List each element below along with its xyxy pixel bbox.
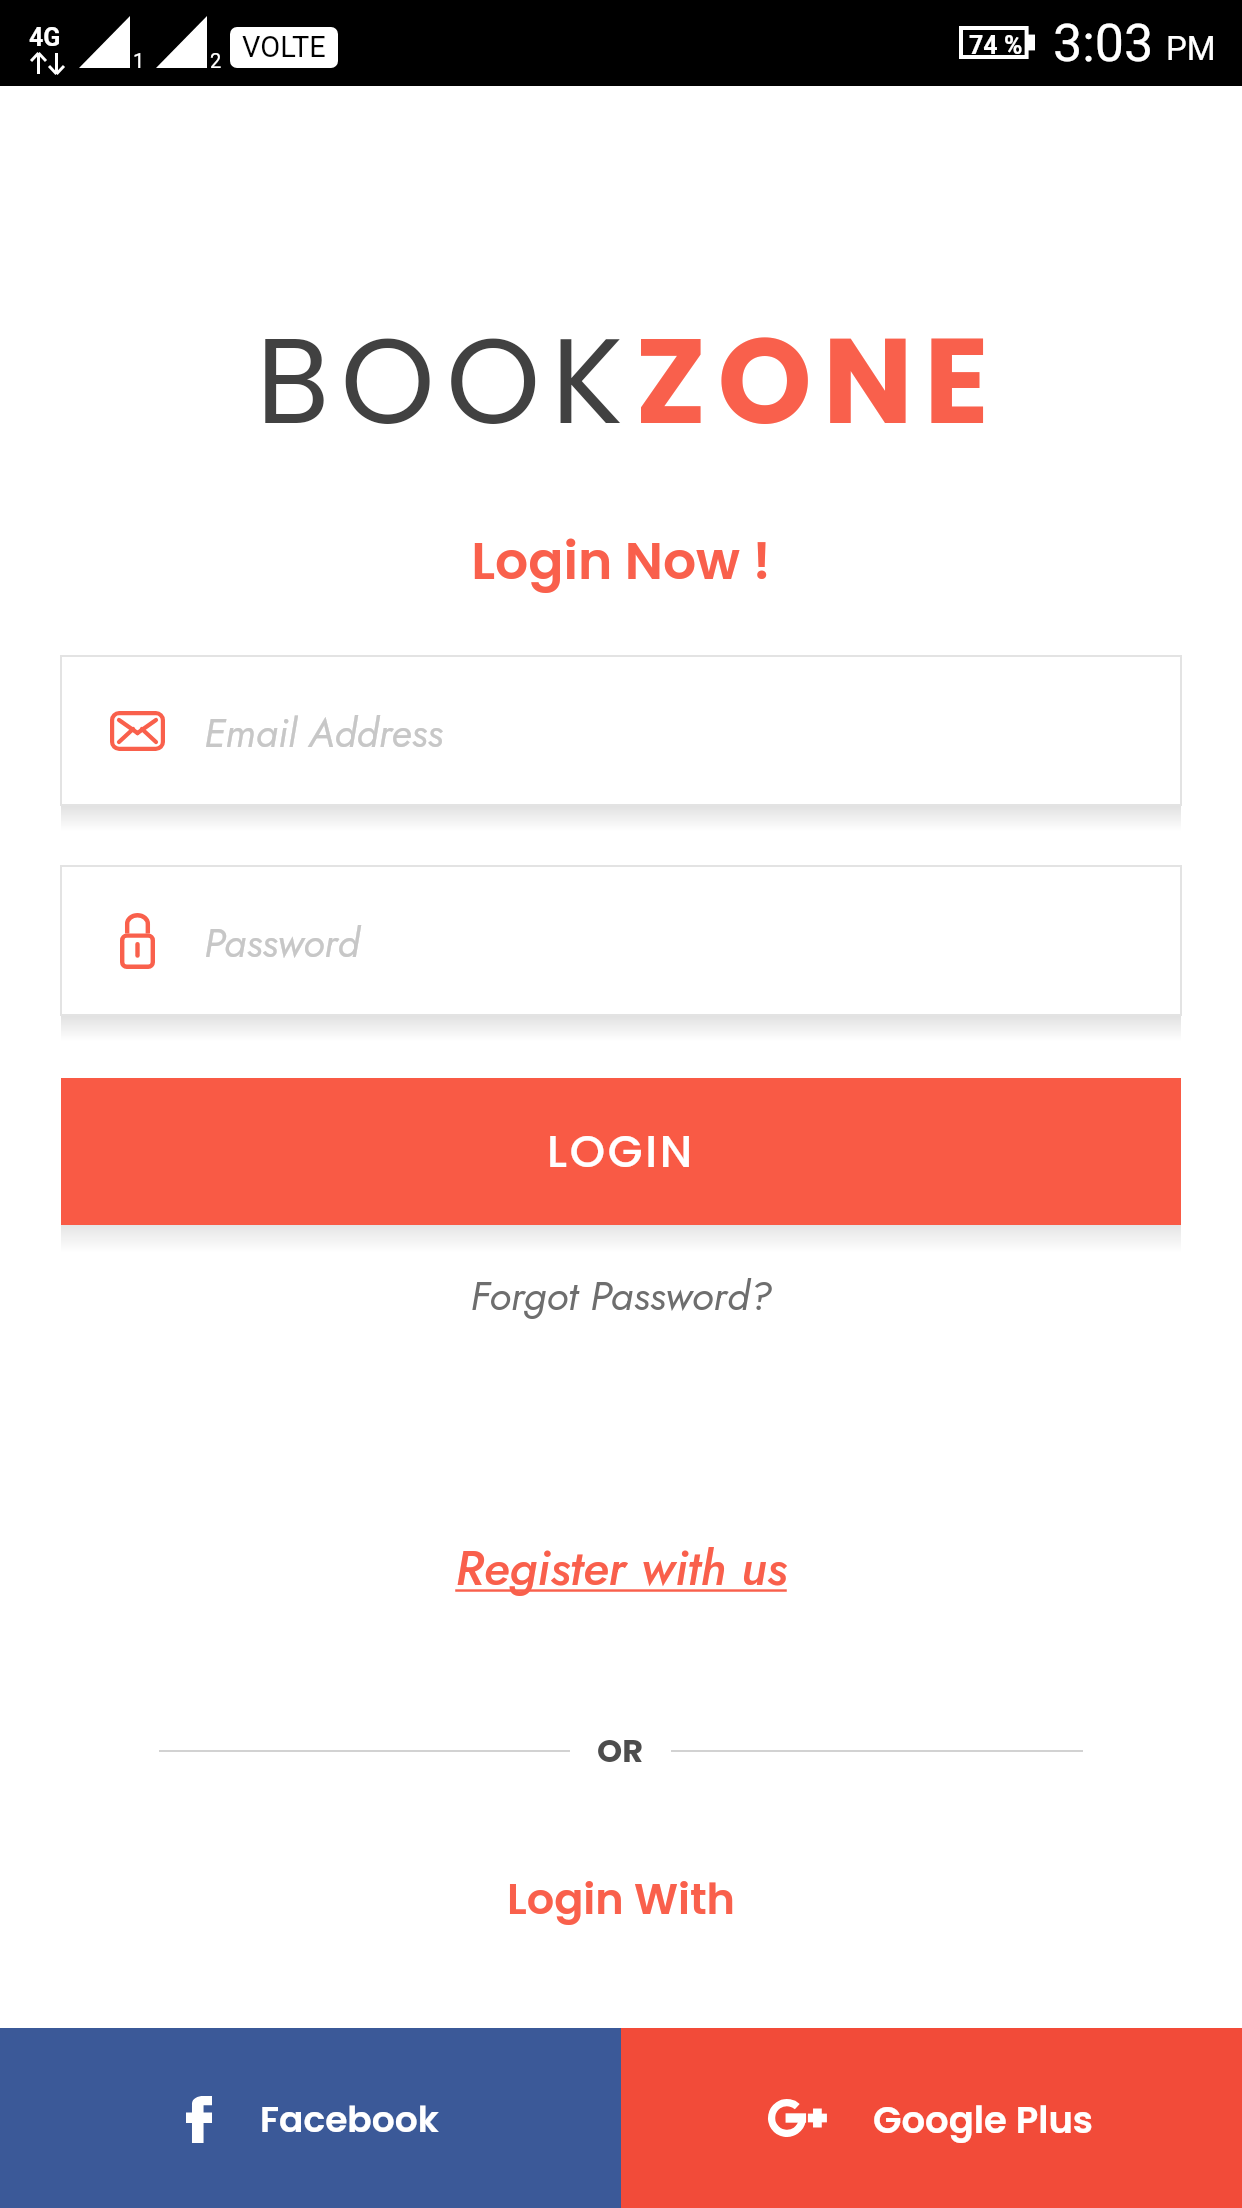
staticText: Login With [0,1869,1242,1929]
other: Email [110,711,165,751]
button[interactable] [61,656,1181,805]
button[interactable] [61,866,1181,1015]
button[interactable]: Facebook [0,2028,621,2208]
staticText: VOLTE [242,30,326,64]
staticText: 2 [210,49,222,72]
staticText: PM [1166,29,1216,68]
staticText: LOGIN [547,1120,695,1183]
staticText: Facebook [260,2094,439,2144]
staticText: 3:03 [1053,13,1154,74]
staticText: 1 [133,49,145,72]
staticText: Password [204,914,360,972]
staticText: BOOK [256,297,635,465]
other: Facebook [186,2096,212,2143]
staticText: 4G [29,23,61,52]
button[interactable]: LOGIN [61,1078,1181,1225]
staticText: ZONE [635,297,1000,465]
staticText: OR [597,1728,644,1773]
other: Password [110,913,165,969]
other: Google Plus [768,2099,825,2137]
staticText: Email Address [204,704,443,762]
staticText: 74 % [969,31,1023,60]
button[interactable]: Register with us [0,1533,1242,1604]
button[interactable]: Forgot Password? [0,1266,1242,1325]
button[interactable]: Google Plus [621,2028,1242,2208]
staticText: Google Plus [873,2094,1094,2146]
staticText: Login Now ! [0,524,1242,597]
